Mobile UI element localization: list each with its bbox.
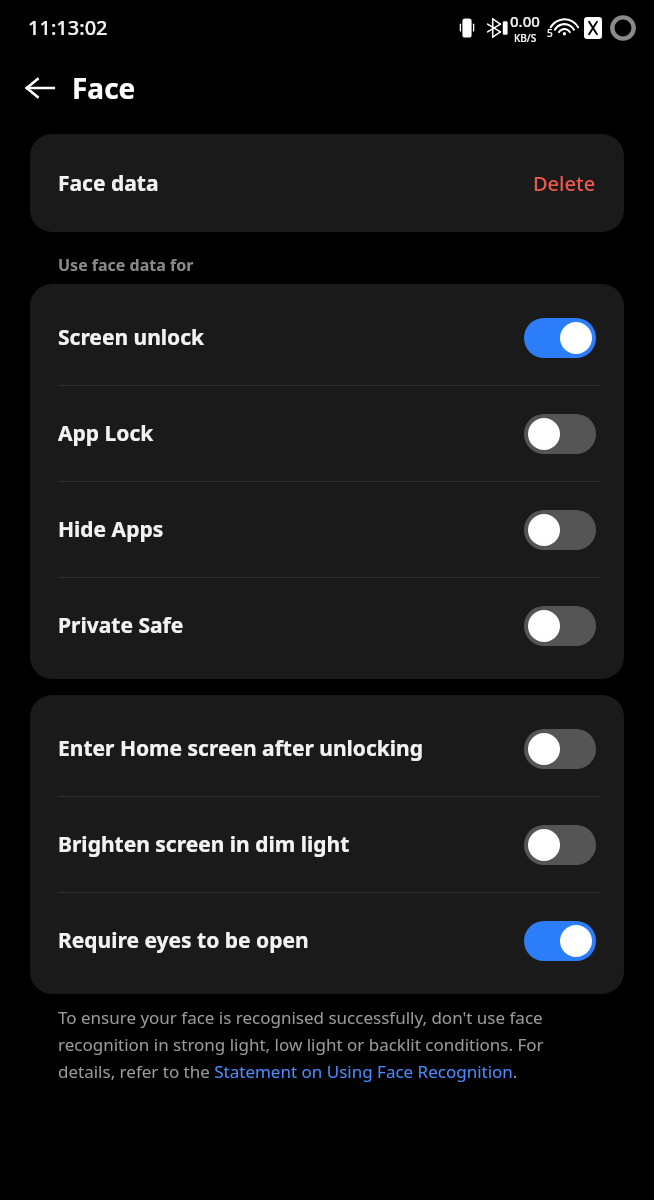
button[interactable]: Screen unlock: [30, 290, 624, 385]
staticText: Private Safe: [58, 611, 524, 640]
staticText: Screen unlock: [58, 323, 524, 352]
button[interactable]: App Lock: [30, 386, 624, 481]
staticText: Use face data for: [58, 254, 194, 276]
staticText: Delete: [533, 170, 596, 197]
button[interactable]: On: [524, 921, 596, 961]
staticText: Enter Home screen after unlocking: [58, 734, 524, 763]
button[interactable]: Off: [524, 510, 596, 550]
button[interactable]: Hide Apps: [30, 482, 624, 577]
button[interactable]: On: [524, 318, 596, 358]
staticText: Face: [72, 69, 136, 107]
button[interactable]: Off: [524, 729, 596, 769]
staticText: 0.00: [510, 11, 540, 31]
staticText: Brighten screen in dim light: [58, 830, 524, 859]
button[interactable]: Back: [14, 62, 66, 114]
button[interactable]: Private Safe: [30, 578, 624, 673]
staticText: To ensure your face is recognised succes…: [58, 1006, 596, 1083]
staticText: KB/S: [514, 31, 537, 45]
button[interactable]: Brighten screen in dim light: [30, 797, 624, 892]
button[interactable]: Off: [524, 606, 596, 646]
staticText: 5: [547, 26, 553, 40]
button[interactable]: Require eyes to be open: [30, 893, 624, 988]
staticText: Require eyes to be open: [58, 926, 524, 955]
staticText: Hide Apps: [58, 515, 524, 544]
staticText: 11:13:02: [28, 14, 108, 41]
button[interactable]: Off: [524, 825, 596, 865]
button[interactable]: Delete: [533, 170, 596, 197]
button[interactable]: Face data: [30, 134, 624, 232]
button[interactable]: Enter Home screen after unlocking: [30, 701, 624, 796]
button[interactable]: Off: [524, 414, 596, 454]
staticText: App Lock: [58, 419, 524, 448]
staticText: Face data: [58, 169, 159, 198]
